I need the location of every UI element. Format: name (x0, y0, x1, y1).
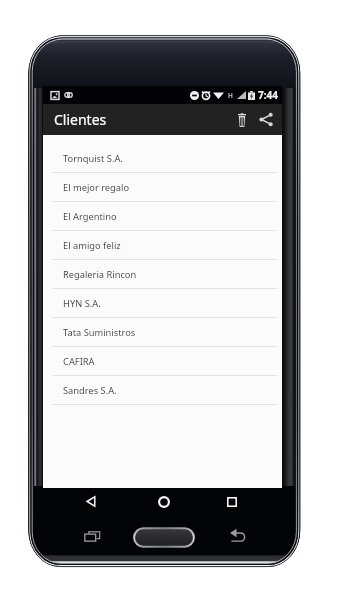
staticText: Sandres S.A. (63, 384, 117, 397)
button[interactable]: El Argentino (43, 202, 282, 231)
button[interactable]: Tornquist S.A. (43, 144, 282, 173)
button[interactable]: Home (144, 488, 184, 515)
button[interactable]: Home button (132, 526, 196, 549)
button[interactable]: Delete (230, 104, 254, 135)
button[interactable]: Back (71, 488, 111, 515)
staticText: Regaleria Rincon (63, 268, 137, 281)
button[interactable]: Sandres S.A. (43, 376, 282, 405)
button[interactable]: Regaleria Rincon (43, 260, 282, 289)
button[interactable]: El amigo feliz (43, 231, 282, 260)
button[interactable]: El mejor regalo (43, 173, 282, 202)
staticText: El Argentino (63, 210, 117, 223)
staticText: Clientes (54, 110, 107, 129)
button[interactable]: Share (254, 104, 278, 135)
staticText: CAFIRA (63, 355, 95, 368)
button[interactable]: CAFIRA (43, 347, 282, 376)
button[interactable]: Back (221, 525, 253, 547)
button[interactable]: HYN S.A. (43, 289, 282, 318)
staticText: Tata Suministros (63, 326, 136, 339)
button[interactable]: Recent apps (212, 488, 252, 515)
staticText: Tornquist S.A. (63, 152, 123, 165)
staticText: HYN S.A. (63, 297, 101, 310)
staticText: El mejor regalo (63, 181, 130, 194)
button[interactable]: Tata Suministros (43, 318, 282, 347)
staticText: El amigo feliz (63, 239, 121, 252)
staticText: 7:44 (258, 88, 278, 102)
button[interactable]: Recent apps (76, 525, 107, 547)
staticText: H (228, 91, 233, 100)
